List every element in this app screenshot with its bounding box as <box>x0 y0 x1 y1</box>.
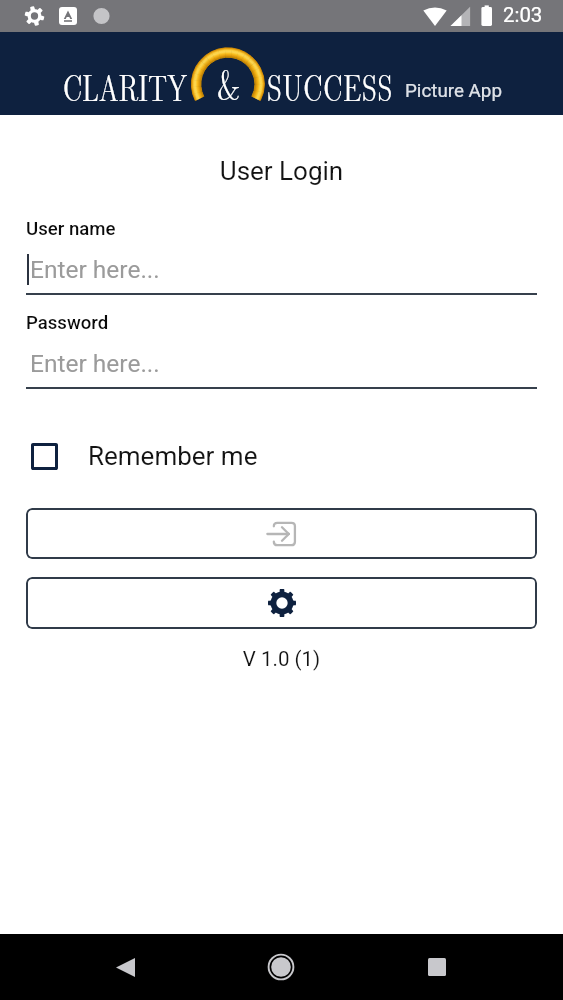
button[interactable]: Login <box>26 508 537 559</box>
staticText: SUCCESS <box>267 61 394 116</box>
button[interactable]: Back <box>99 941 151 993</box>
staticText: Remember me <box>88 441 258 471</box>
staticText: Picture App <box>405 80 502 102</box>
staticText: User Login <box>0 156 563 186</box>
button[interactable]: Settings <box>26 577 537 629</box>
button[interactable]: Recents <box>411 941 463 993</box>
button[interactable]: Enter here... <box>26 253 537 301</box>
staticText: Enter here... <box>30 255 160 284</box>
other: Login <box>265 517 299 551</box>
staticText: & <box>217 55 241 117</box>
button[interactable]: Home <box>255 941 307 993</box>
staticText: Password <box>26 312 109 334</box>
button[interactable]: Remember me <box>0 437 563 475</box>
staticText: User name <box>26 218 116 240</box>
staticText: Enter here... <box>30 349 160 378</box>
staticText: 2:03 <box>503 3 543 27</box>
other: Settings <box>268 589 296 617</box>
staticText: CLARITY <box>63 61 188 116</box>
button[interactable]: Enter here... <box>26 347 537 395</box>
staticText: V 1.0 (1) <box>0 647 563 671</box>
